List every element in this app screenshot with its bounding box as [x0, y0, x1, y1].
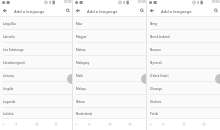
- button[interactable]: O‘zbek (lotin): [147, 69, 220, 82]
- staticText: Nmg: [150, 22, 157, 26]
- button[interactable]: Home: [106, 120, 114, 128]
- button[interactable]: Norsk bokmål: [147, 30, 220, 43]
- staticText: 07:05: [64, 0, 72, 4]
- staticText: Oluanga: [150, 87, 162, 91]
- staticText: Latgalīšu: [3, 22, 16, 26]
- button[interactable]: Nederlands: [73, 108, 146, 119]
- button[interactable]: Navigate up: [148, 7, 156, 15]
- button[interactable]: Add a language: [87, 9, 118, 15]
- button[interactable]: Otuhivo: [147, 95, 220, 108]
- button[interactable]: Back: [85, 120, 93, 128]
- button[interactable]: Ndora: [73, 95, 146, 108]
- button[interactable]: Search: [138, 7, 146, 15]
- button[interactable]: Scroll: [215, 74, 220, 84]
- staticText: Polski: [150, 112, 159, 116]
- button[interactable]: Malagasy: [73, 56, 146, 69]
- button[interactable]: Navigate up: [74, 7, 82, 15]
- staticText: Nuosue: [150, 48, 161, 52]
- button[interactable]: Lea Fakatonga: [0, 43, 72, 56]
- button[interactable]: Navigate up: [1, 7, 9, 15]
- button[interactable]: Maa: [73, 17, 146, 30]
- button[interactable]: Recent apps: [126, 120, 134, 128]
- button[interactable]: Back: [12, 120, 20, 128]
- staticText: Lingála: [3, 87, 14, 91]
- staticText: 07:05: [138, 0, 146, 4]
- staticText: Maa: [76, 22, 83, 26]
- staticText: Ndora: [76, 100, 85, 104]
- button[interactable]: Home: [180, 120, 188, 128]
- button[interactable]: Lëtzebuergesch: [0, 56, 72, 69]
- button[interactable]: Latviešu: [0, 30, 72, 43]
- staticText: Lëtzebuergesch: [3, 61, 26, 65]
- button[interactable]: Search: [64, 7, 72, 15]
- button[interactable]: Add a language: [14, 9, 45, 15]
- button[interactable]: Lietuvių: [0, 69, 72, 82]
- button[interactable]: Switch keyboard: [148, 122, 153, 127]
- staticText: Malagasy: [76, 61, 90, 65]
- button[interactable]: Nuosue: [147, 43, 220, 56]
- staticText: Luganda: [3, 100, 16, 104]
- staticText: Malti: [76, 74, 84, 78]
- button[interactable]: Latgalīšu: [0, 17, 72, 30]
- staticText: Makua: [76, 48, 86, 52]
- staticText: Magyar: [76, 35, 87, 39]
- button[interactable]: Magyar: [73, 30, 146, 43]
- staticText: Nederlands: [76, 112, 93, 116]
- staticText: Melayu: [76, 87, 87, 91]
- staticText: Otuhivo: [150, 100, 162, 104]
- button[interactable]: Luluhia: [0, 108, 72, 119]
- button[interactable]: Scroll: [141, 74, 146, 84]
- staticText: Norsk bokmål: [150, 35, 170, 39]
- button[interactable]: Scroll: [67, 74, 72, 84]
- staticText: Latviešu: [3, 35, 15, 39]
- button[interactable]: Malti: [73, 69, 146, 82]
- button[interactable]: Lingála: [0, 82, 72, 95]
- button[interactable]: Melayu: [73, 82, 146, 95]
- button[interactable]: Polski: [147, 108, 220, 119]
- button[interactable]: Nmg: [147, 17, 220, 30]
- staticText: Lietuvių: [3, 74, 15, 78]
- button[interactable]: Switch keyboard: [1, 122, 6, 127]
- staticText: Lea Fakatonga: [3, 48, 24, 52]
- button[interactable]: Oluanga: [147, 82, 220, 95]
- button[interactable]: Home: [33, 120, 41, 128]
- button[interactable]: Makua: [73, 43, 146, 56]
- button[interactable]: Switch keyboard: [74, 122, 79, 127]
- staticText: Luluhia: [3, 112, 14, 116]
- staticText: O‘zbek (lotin): [150, 74, 169, 78]
- button[interactable]: Add a language: [161, 9, 192, 15]
- button[interactable]: Search: [212, 7, 220, 15]
- button[interactable]: Nynorsk: [147, 56, 220, 69]
- button[interactable]: Back: [159, 120, 167, 128]
- staticText: Nynorsk: [150, 61, 162, 65]
- button[interactable]: Recent apps: [52, 120, 60, 128]
- button[interactable]: Recent apps: [200, 120, 208, 128]
- button[interactable]: Luganda: [0, 95, 72, 108]
- staticText: 07:05: [212, 0, 220, 4]
